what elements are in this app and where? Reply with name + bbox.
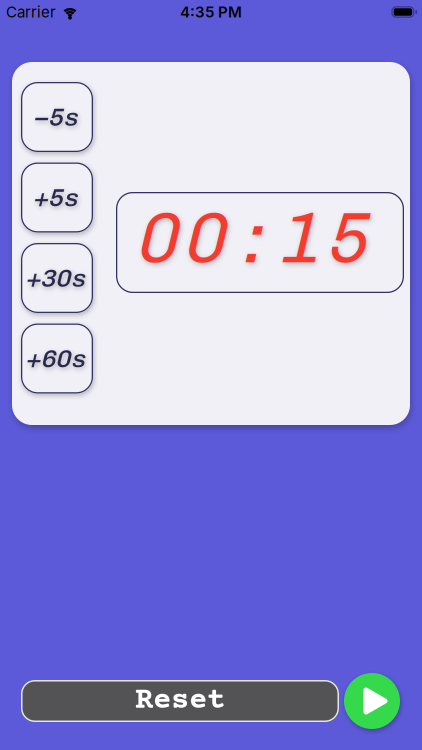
button[interactable]: Start xyxy=(344,673,400,729)
staticText: Reset xyxy=(135,684,225,718)
button[interactable]: +5s xyxy=(21,162,93,232)
staticText: 1 xyxy=(281,196,323,280)
staticText: 5 xyxy=(329,196,371,280)
staticText: +60s xyxy=(27,344,87,373)
button[interactable]: Reset xyxy=(21,680,339,722)
staticText: : xyxy=(234,196,276,280)
button[interactable]: +60s xyxy=(21,323,93,393)
staticText: +30s xyxy=(27,263,87,293)
staticText: Carrier xyxy=(6,3,56,21)
staticText: 0 xyxy=(186,196,228,280)
staticText: −5s xyxy=(34,102,79,132)
staticText: 0 xyxy=(139,196,181,280)
staticText: 4:35 PM xyxy=(180,3,242,21)
button[interactable]: −5s xyxy=(21,82,93,152)
button[interactable]: +30s xyxy=(21,243,93,313)
staticText: +5s xyxy=(34,183,79,212)
